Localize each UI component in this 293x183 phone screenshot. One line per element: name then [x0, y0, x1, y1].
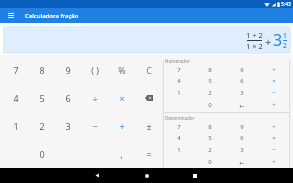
staticText: × [272, 77, 276, 85]
staticText: 1 × 2 [246, 41, 263, 51]
button[interactable]: + [258, 121, 290, 132]
button[interactable] [163, 99, 194, 111]
button[interactable]: 0 [29, 140, 55, 168]
button[interactable]: ÷ [81, 84, 108, 112]
staticText: ← [239, 159, 245, 166]
button[interactable]: 7 [163, 121, 194, 132]
staticText: Denominador [165, 115, 195, 121]
staticText: 3 [240, 89, 244, 97]
button[interactable]: 9 [226, 121, 258, 132]
button[interactable]: 3 [55, 112, 81, 140]
button[interactable]: × [108, 84, 135, 112]
button[interactable]: 6 [226, 75, 258, 87]
button[interactable]: 2 [194, 144, 226, 156]
button[interactable]: 8 [194, 121, 226, 132]
button[interactable]: 1 [163, 87, 194, 99]
staticText: 2 [208, 146, 212, 154]
button[interactable]: 5 [194, 75, 226, 87]
button[interactable]: 6 [226, 132, 258, 144]
button[interactable]: × [258, 75, 290, 87]
button[interactable]: 3 [226, 87, 258, 99]
staticText: 7 [13, 64, 19, 76]
button[interactable]: 7 [3, 55, 29, 84]
button[interactable]: 3 [226, 144, 258, 156]
staticText: ± [146, 120, 152, 132]
staticText: 4 [177, 77, 181, 85]
button[interactable]: × [258, 132, 290, 144]
staticText: 5 [208, 77, 212, 85]
staticText: 2 [208, 89, 212, 97]
staticText: 4 [177, 134, 181, 142]
staticText: 7 [177, 66, 181, 74]
button[interactable]: + [258, 64, 290, 75]
staticText: 8 [208, 66, 212, 74]
staticText: 1 + 2 [246, 30, 263, 40]
staticText: , [120, 148, 123, 160]
button[interactable]: 2 [194, 87, 226, 99]
staticText: 1 [13, 120, 19, 132]
button[interactable]: + [258, 156, 290, 168]
button[interactable]: 9 [226, 64, 258, 75]
button[interactable]: − [258, 87, 290, 99]
staticText: 5 [39, 92, 45, 104]
button[interactable]: , [108, 140, 135, 168]
button[interactable]: 0 [194, 156, 226, 168]
button[interactable]: 5 [29, 84, 55, 112]
staticText: × [272, 134, 276, 142]
staticText: 6 [65, 92, 71, 104]
button[interactable]: C [135, 55, 162, 84]
button[interactable]: % [108, 55, 135, 84]
button[interactable]: ← [226, 156, 258, 168]
button[interactable]: ± [135, 112, 162, 140]
staticText: 3 [240, 146, 244, 154]
staticText: × [119, 92, 125, 104]
staticText: 1 [177, 146, 181, 154]
staticText: ← [239, 102, 245, 109]
button[interactable]: Home [137, 168, 157, 183]
staticText: ÷ [92, 92, 98, 104]
button[interactable]: 1 [163, 144, 194, 156]
button[interactable]: + [108, 112, 135, 140]
staticText: + [272, 123, 276, 131]
button[interactable]: 5 [194, 132, 226, 144]
button[interactable]: ( ) [81, 55, 108, 84]
staticText: C [146, 64, 152, 76]
button[interactable]: Backspace [135, 84, 162, 112]
button[interactable]: + [258, 99, 290, 111]
staticText: − [272, 146, 276, 154]
button[interactable] [163, 156, 194, 168]
staticText: 5 [208, 134, 212, 142]
button[interactable]: − [81, 112, 108, 140]
button[interactable]: 0 [194, 99, 226, 111]
staticText: 6 [240, 77, 244, 85]
button[interactable]: 6 [55, 84, 81, 112]
button[interactable]: ← [226, 99, 258, 111]
staticText: 8 [208, 123, 212, 131]
button[interactable]: 4 [3, 84, 29, 112]
staticText: Numerador [165, 58, 190, 64]
staticText: 9 [240, 66, 244, 74]
button[interactable]: 8 [29, 55, 55, 84]
button[interactable]: − [258, 144, 290, 156]
staticText: 3 [273, 29, 283, 51]
button[interactable]: 4 [163, 132, 194, 144]
staticText: 0 [208, 101, 212, 109]
staticText: − [272, 89, 276, 97]
button[interactable]: Recent apps [185, 168, 205, 183]
button[interactable]: 4 [163, 75, 194, 87]
button[interactable]: 9 [55, 55, 81, 84]
button[interactable]: = [135, 140, 162, 168]
button[interactable]: Back [87, 168, 107, 183]
button[interactable]: 8 [194, 64, 226, 75]
button[interactable]: 7 [163, 64, 194, 75]
button[interactable]: 1 [3, 112, 29, 140]
staticText: 3 [65, 120, 71, 132]
staticText: + [272, 158, 276, 166]
staticText: 9 [65, 64, 71, 76]
button[interactable]: Open navigation menu [0, 8, 22, 23]
button[interactable]: 2 [29, 112, 55, 140]
staticText: 1 [283, 31, 287, 40]
